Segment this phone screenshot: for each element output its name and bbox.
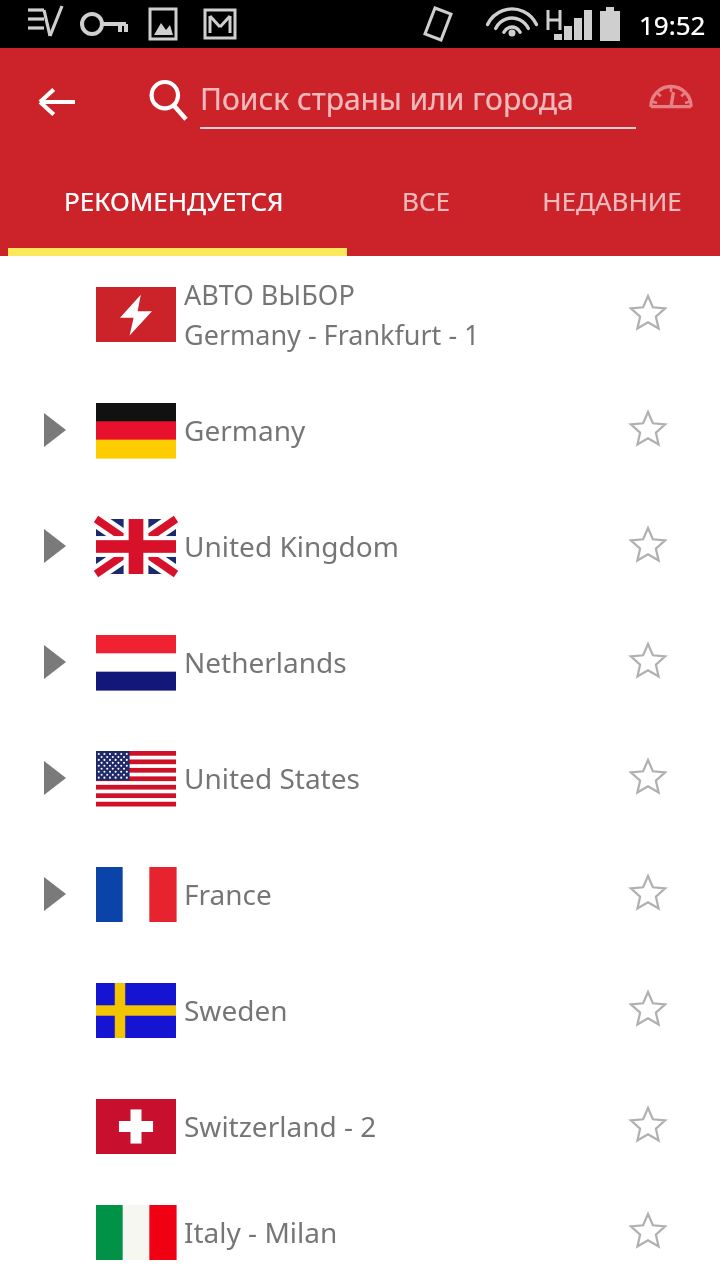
staticText: Germany [184, 411, 306, 449]
button[interactable]: Favorite [620, 286, 676, 342]
button[interactable]: United Kingdom [0, 488, 720, 604]
button[interactable]: Favorite [620, 982, 676, 1038]
staticText: АВТО ВЫБОР [184, 276, 355, 313]
button[interactable]: Italy - Milan [0, 1184, 720, 1280]
button[interactable]: Back [20, 66, 92, 138]
button[interactable]: АВТО ВЫБОР [0, 256, 720, 372]
button[interactable]: Favorite [620, 1204, 676, 1260]
staticText: United Kingdom [184, 527, 399, 565]
staticText: Italy - Milan [184, 1213, 338, 1251]
button[interactable]: Switzerland - 2 [0, 1068, 720, 1184]
staticText: Germany - Frankfurt - 1 [184, 316, 480, 353]
staticText: United States [184, 759, 360, 797]
staticText: НЕДАВНИЕ [542, 183, 682, 218]
button[interactable]: Sweden [0, 952, 720, 1068]
staticText: France [184, 875, 272, 913]
staticText: РЕКОМЕНДУЕТСЯ [64, 183, 284, 218]
staticText: Netherlands [184, 643, 347, 681]
staticText: ВСЕ [402, 183, 450, 218]
button[interactable]: France [0, 836, 720, 952]
staticText: Switzerland - 2 [184, 1107, 377, 1145]
button[interactable]: United States [0, 720, 720, 836]
button[interactable]: Germany [0, 372, 720, 488]
staticText: Поиск страны или города [200, 78, 574, 119]
button[interactable]: ВСЕ [347, 156, 504, 256]
button[interactable]: РЕКОМЕНДУЕТСЯ [0, 156, 347, 256]
button[interactable]: НЕДАВНИЕ [504, 156, 720, 256]
button[interactable]: Favorite [620, 1098, 676, 1154]
staticText: Sweden [184, 991, 288, 1029]
button[interactable]: Favorite [620, 866, 676, 922]
button[interactable]: Favorite [620, 402, 676, 458]
button[interactable]: Speed test [640, 67, 702, 129]
button[interactable]: Favorite [620, 634, 676, 690]
staticText: 19:52 [639, 7, 706, 42]
button[interactable]: Netherlands [0, 604, 720, 720]
button[interactable]: Favorite [620, 518, 676, 574]
button[interactable]: Favorite [620, 750, 676, 806]
